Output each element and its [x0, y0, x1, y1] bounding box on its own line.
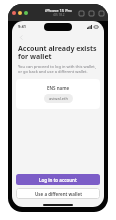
staticText: ENS name	[47, 85, 70, 91]
button[interactable]: Minimize	[18, 11, 22, 15]
staticText: Log in to account	[39, 177, 77, 183]
button[interactable]: ENS name	[16, 79, 100, 109]
staticText: Account already exists for wallet	[18, 44, 98, 61]
staticText: 9:41	[18, 24, 26, 29]
staticText: You can proceed to log in with this wall…	[18, 64, 98, 74]
button[interactable]: Screenshot	[88, 10, 94, 16]
button[interactable]: Back	[17, 33, 26, 42]
button[interactable]: Close	[12, 11, 16, 15]
staticText: aviwal.eth	[49, 96, 68, 101]
button[interactable]: Zoom	[24, 11, 28, 15]
button[interactable]: Record	[98, 10, 104, 16]
staticText: iOS 18.2	[53, 13, 65, 17]
button[interactable]: Use a different wallet	[16, 188, 100, 199]
staticText: Use a different wallet	[35, 191, 82, 197]
staticText: iPhone 15 Pro	[45, 8, 72, 13]
button[interactable]: Home	[78, 10, 84, 16]
button[interactable]: Log in to account	[16, 174, 100, 185]
